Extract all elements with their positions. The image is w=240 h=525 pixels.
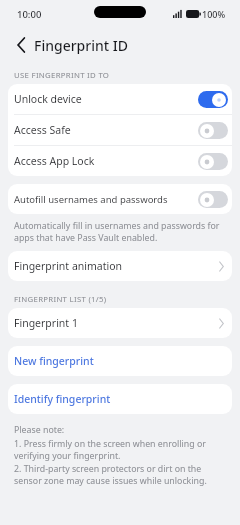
staticText: Fingerprint animation [14,259,219,273]
button[interactable]: Back [10,34,32,56]
staticText: Fingerprint 1 [14,316,219,330]
staticText: Automatically fill in usernames and pass… [14,220,226,243]
staticText: 100% [202,8,226,20]
staticText: FINGERPRINT LIST (1/5) [14,294,107,305]
button[interactable]: Fingerprint animation [8,251,232,281]
staticText: Autofill usernames and passwords [14,193,198,206]
button[interactable]: Access Safe [8,115,232,145]
staticText: Access Safe [14,123,198,137]
button[interactable]: Off [198,153,228,170]
staticText: Please note: [14,424,65,436]
staticText: Identify fingerprint [14,392,111,406]
button[interactable]: Unlock device [8,84,232,114]
button[interactable]: On [198,91,228,108]
staticText: 1. Press firmly on the screen when enrol… [14,438,228,461]
button[interactable]: Access App Lock [8,146,232,176]
button[interactable]: Off [198,191,228,208]
staticText: New fingerprint [14,354,94,368]
button[interactable]: Autofill usernames and passwords [8,184,232,214]
staticText: Access App Lock [14,154,198,168]
staticText: 2. Third-party screen protectors or dirt… [14,463,228,486]
staticText: Fingerprint ID [34,36,128,55]
staticText: 10:00 [17,8,42,21]
staticText: USE FINGERPRINT ID TO [14,70,110,81]
button[interactable]: New fingerprint [8,346,232,376]
button[interactable]: Off [198,122,228,139]
button[interactable]: Identify fingerprint [8,384,232,414]
staticText: Unlock device [14,92,198,106]
button[interactable]: Fingerprint 1 [8,308,232,338]
